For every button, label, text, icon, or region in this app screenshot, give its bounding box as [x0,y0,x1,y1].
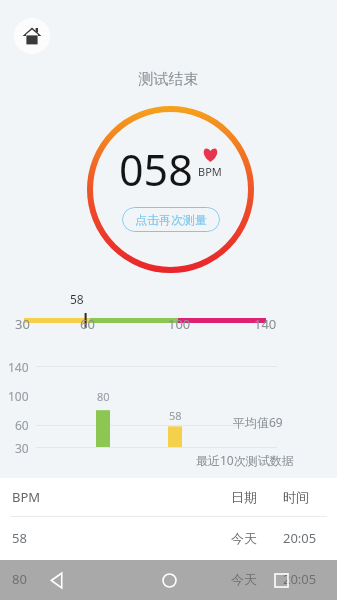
staticText: 日期 [231,489,257,505]
staticText: 今天 [231,571,257,587]
staticText: 140 [254,315,277,333]
button[interactable]: Home [14,18,50,54]
button[interactable]: Home [113,560,225,600]
staticText: 80 [12,570,27,588]
staticText: 80 [97,389,110,404]
staticText: 时间 [283,489,309,505]
staticText: 100 [168,315,191,333]
staticText: 140 [8,359,29,375]
staticText: 058 [119,140,193,199]
staticText: 20:05 [283,529,317,547]
staticText: 58 [169,408,182,423]
staticText: 20:05 [283,570,317,588]
staticText: 点击再次测量 [135,212,207,227]
staticText: 30 [15,315,30,333]
staticText: 今天 [231,530,257,546]
staticText: 平均值69 [233,414,283,430]
staticText: 最近10次测试数据 [196,452,294,468]
staticText: 30 [15,440,29,456]
button[interactable]: 点击再次测量 [122,207,220,232]
staticText: 60 [80,315,95,333]
button[interactable]: 58 [0,517,337,558]
staticText: 测试结束 [0,70,337,89]
staticText: 58 [70,291,84,307]
button[interactable]: Recents [225,560,337,600]
button[interactable]: Back [0,560,113,600]
button[interactable]: 80 [0,558,337,599]
staticText: BPM [12,488,41,506]
staticText: 60 [15,417,29,433]
staticText: 100 [8,388,29,404]
staticText: 58 [12,529,27,547]
staticText: BPM [198,164,222,179]
